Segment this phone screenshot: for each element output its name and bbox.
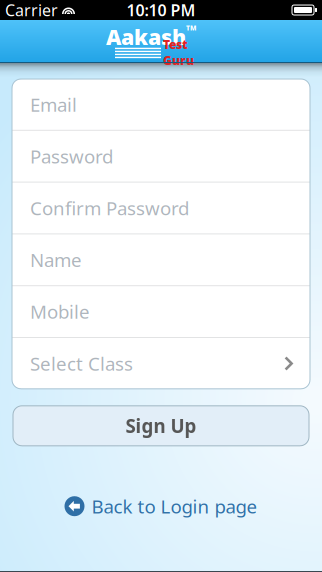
button[interactable]: Back to Login page bbox=[64, 494, 257, 519]
staticText: 10:10 PM bbox=[126, 0, 195, 21]
staticText: Aakash bbox=[106, 22, 186, 51]
staticText: Email bbox=[30, 92, 77, 117]
button[interactable]: Mobile bbox=[12, 286, 310, 337]
staticText: Sign Up bbox=[125, 413, 196, 438]
staticText: Back to Login page bbox=[91, 494, 257, 519]
button[interactable]: Email bbox=[12, 79, 310, 130]
button[interactable]: Confirm Password bbox=[12, 183, 310, 233]
staticText: Select Class bbox=[30, 351, 133, 376]
button[interactable]: Name bbox=[12, 234, 310, 285]
staticText: TM bbox=[186, 23, 196, 32]
staticText: Mobile bbox=[30, 299, 90, 324]
staticText: Confirm Password bbox=[30, 196, 189, 220]
staticText: Name bbox=[30, 247, 82, 272]
button[interactable]: Password bbox=[12, 131, 310, 182]
staticText: Test Guru bbox=[163, 36, 194, 68]
staticText: Carrier bbox=[5, 0, 58, 21]
staticText: Password bbox=[30, 144, 113, 169]
button[interactable]: Select Class bbox=[12, 338, 310, 389]
button[interactable]: Sign Up bbox=[13, 406, 309, 446]
